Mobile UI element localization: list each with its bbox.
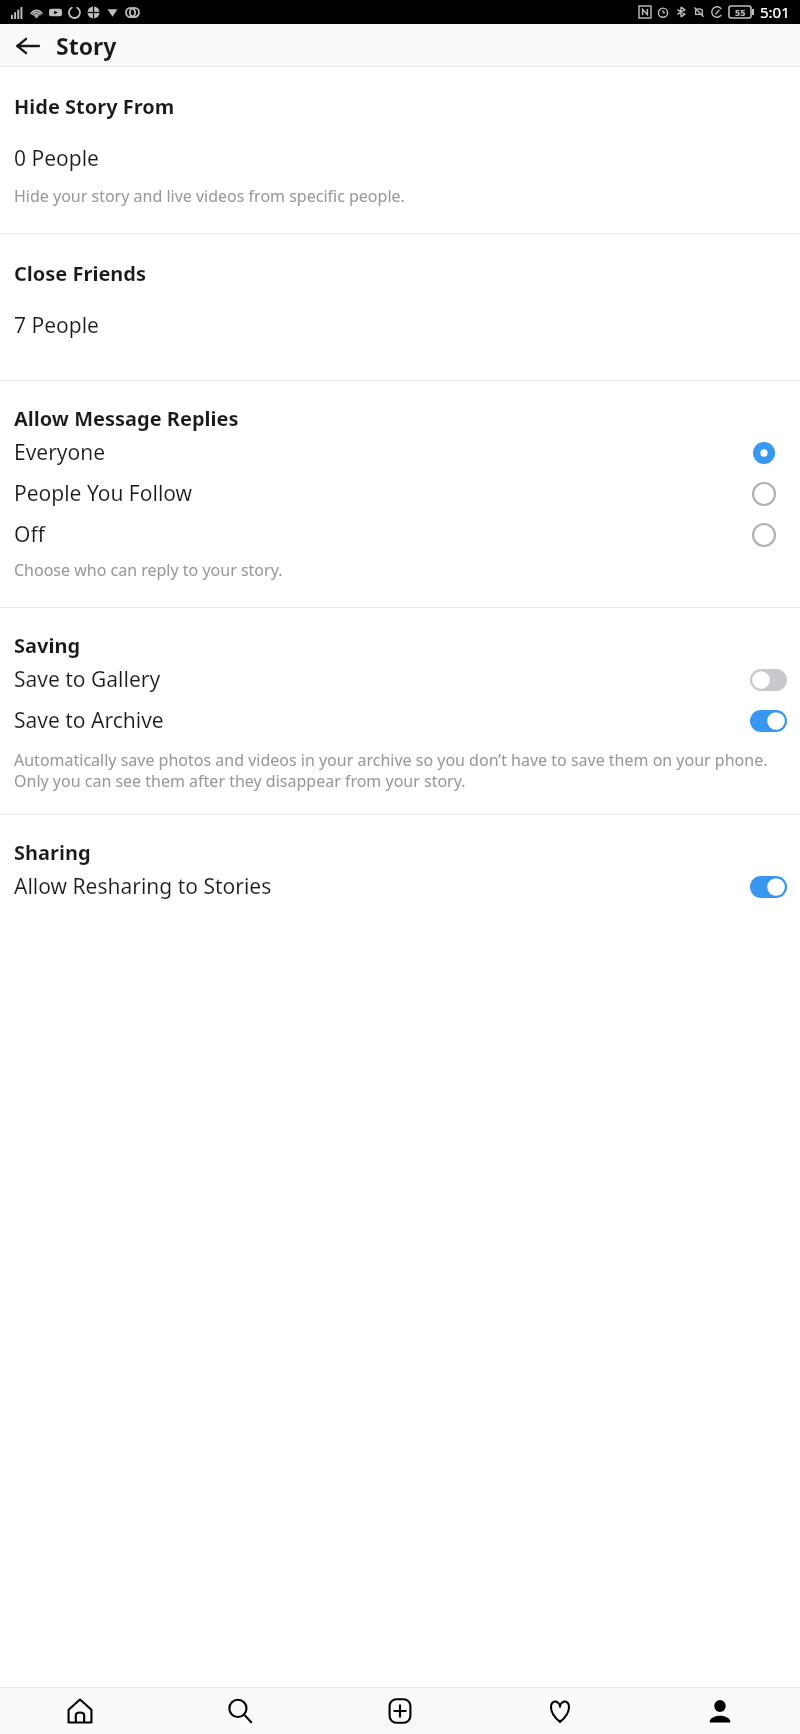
button[interactable]: Save to Archive — [0, 700, 800, 741]
button[interactable]: Home — [0, 1688, 160, 1734]
staticText: People You Follow — [14, 479, 752, 508]
staticText: Story — [56, 30, 117, 61]
staticText: Hide your story and live videos from spe… — [14, 185, 786, 207]
staticText: Allow Resharing to Stories — [14, 872, 750, 901]
staticText: Close Friends — [14, 260, 146, 287]
staticText: Automatically save photos and videos in … — [14, 749, 786, 792]
button[interactable]: Create — [320, 1688, 480, 1734]
button[interactable]: Allow Resharing to Stories — [0, 866, 800, 907]
staticText: Everyone — [14, 438, 752, 467]
button[interactable]: Search — [160, 1688, 320, 1734]
staticText: Choose who can reply to your story. — [14, 559, 786, 581]
button[interactable]: People You Follow — [0, 473, 800, 514]
staticText: Hide Story From — [14, 93, 175, 120]
staticText: Off — [14, 520, 752, 549]
button[interactable]: 7 People — [0, 287, 800, 342]
staticText: 55 — [735, 6, 746, 18]
button[interactable]: 0 People — [0, 120, 800, 175]
staticText: Sharing — [14, 839, 91, 866]
staticText: 0 People — [14, 144, 99, 173]
button[interactable]: Profile — [640, 1688, 800, 1734]
button[interactable]: Everyone — [0, 432, 800, 473]
staticText: 5:01 — [760, 2, 790, 22]
button[interactable]: Activity — [480, 1688, 640, 1734]
button[interactable]: Save to Gallery — [0, 659, 800, 700]
staticText: Saving — [14, 632, 81, 659]
button[interactable]: Back — [0, 24, 56, 67]
staticText: Save to Archive — [14, 706, 750, 735]
staticText: Allow Message Replies — [14, 405, 239, 432]
staticText: 7 People — [14, 311, 99, 340]
button[interactable]: Off — [0, 514, 800, 555]
staticText: Save to Gallery — [14, 665, 750, 694]
